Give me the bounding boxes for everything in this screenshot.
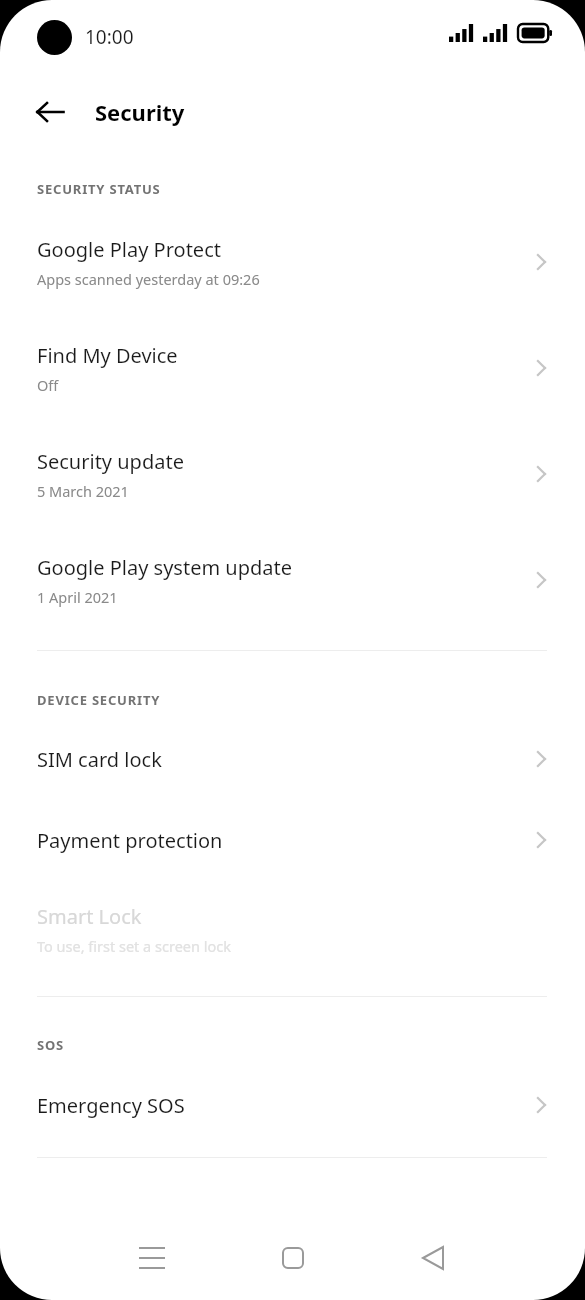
button[interactable]: Security update — [0, 436, 585, 512]
staticText: 1 April 2021 — [37, 587, 118, 607]
staticText: SOS — [37, 1036, 65, 1054]
staticText: Security update — [37, 448, 184, 475]
button[interactable]: Back — [399, 1224, 467, 1292]
staticText: Apps scanned yesterday at 09:26 — [37, 269, 260, 289]
staticText: Off — [37, 375, 59, 395]
button[interactable]: Emergency SOS — [0, 1079, 585, 1131]
staticText: Smart Lock — [37, 903, 142, 930]
button[interactable]: Find My Device — [0, 330, 585, 406]
staticText: 5 March 2021 — [37, 481, 129, 501]
staticText: Security — [95, 97, 185, 127]
staticText: Google Play system update — [37, 554, 293, 581]
staticText: Google Play Protect — [37, 236, 221, 263]
button[interactable]: Back — [24, 86, 76, 138]
staticText: To use, first set a screen lock — [37, 936, 231, 956]
button[interactable]: Google Play Protect — [0, 224, 585, 300]
staticText: Emergency SOS — [37, 1092, 185, 1119]
button[interactable]: Home — [259, 1224, 327, 1292]
button[interactable]: Google Play system update — [0, 542, 585, 618]
staticText: SIM card lock — [37, 746, 162, 773]
button[interactable]: SIM card lock — [0, 733, 585, 785]
staticText: SECURITY STATUS — [37, 180, 161, 198]
button[interactable]: Payment protection — [0, 814, 585, 866]
staticText: DEVICE SECURITY — [37, 691, 161, 709]
button[interactable]: Smart Lock — [0, 891, 585, 967]
button[interactable]: Recent apps — [118, 1224, 186, 1292]
staticText: 10:00 — [85, 24, 134, 50]
staticText: Payment protection — [37, 827, 223, 854]
staticText: Find My Device — [37, 342, 178, 369]
